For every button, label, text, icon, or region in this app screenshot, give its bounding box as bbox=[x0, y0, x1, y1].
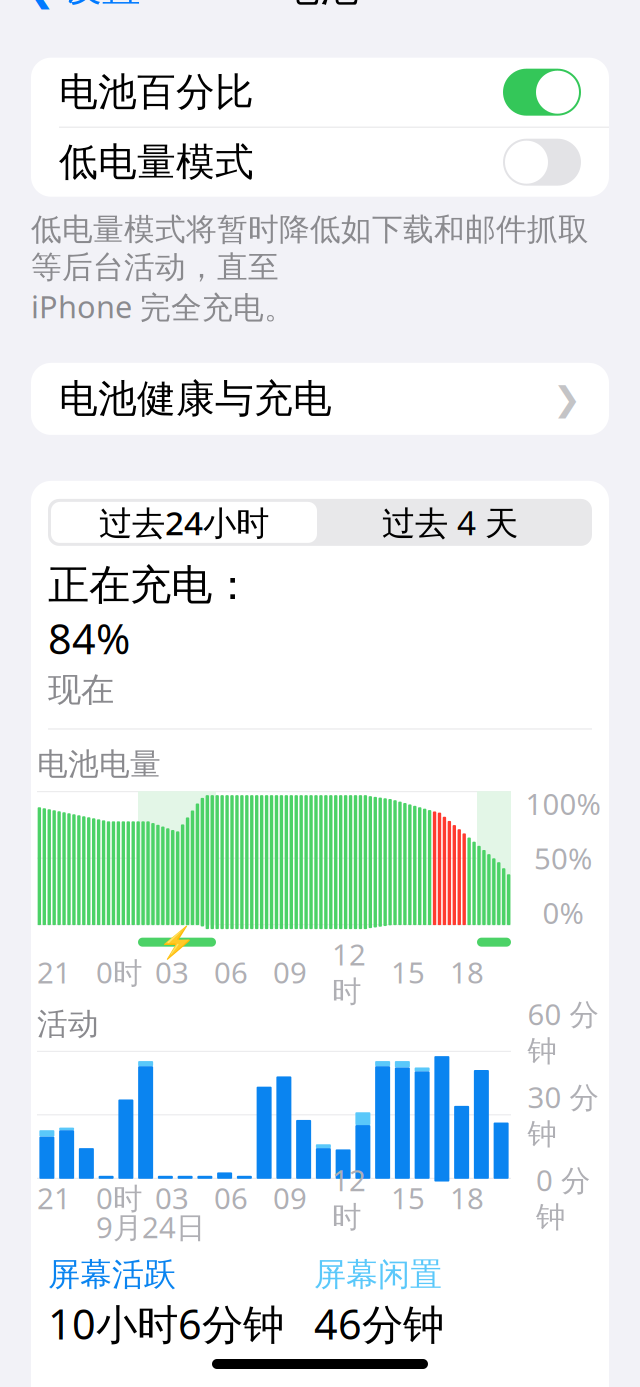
staticText: 过去 4 天 bbox=[382, 500, 518, 545]
staticText: 09 bbox=[273, 1178, 307, 1217]
staticText: 15 bbox=[391, 953, 425, 992]
staticText: 屏幕活跃 bbox=[48, 1255, 176, 1294]
staticText: 06 bbox=[214, 1178, 248, 1217]
staticText: ❮ bbox=[24, 0, 55, 9]
button[interactable]: 低电量模式 bbox=[31, 128, 609, 197]
staticText: 正在充电：84% bbox=[48, 560, 253, 666]
staticText: 电池 bbox=[281, 0, 359, 11]
staticText: ⚡ bbox=[158, 925, 196, 960]
staticText: 15 bbox=[391, 1178, 425, 1217]
staticText: ❯ bbox=[553, 380, 581, 418]
staticText: 9月24日 bbox=[96, 1207, 205, 1246]
staticText: 12时 bbox=[332, 935, 366, 1010]
staticText: 12时 bbox=[332, 1160, 366, 1235]
staticText: 0% bbox=[542, 893, 583, 932]
staticText: 30 分钟 bbox=[527, 1077, 598, 1152]
staticText: 电池电量 bbox=[37, 745, 161, 783]
staticText: 06 bbox=[214, 953, 248, 992]
button[interactable]: 电池百分比 bbox=[31, 58, 609, 127]
staticText: 活动 bbox=[37, 1005, 99, 1043]
button[interactable]: 过去24小时 bbox=[51, 502, 317, 543]
button[interactable]: 过去 4 天 bbox=[317, 502, 583, 543]
staticText: 100% bbox=[525, 784, 600, 823]
staticText: 低电量模式 bbox=[59, 138, 254, 186]
staticText: 21 bbox=[37, 1178, 71, 1217]
staticText: 03 bbox=[155, 1178, 189, 1217]
staticText: 50% bbox=[534, 839, 592, 878]
staticText: 设置 bbox=[63, 0, 141, 11]
staticText: 46分钟 bbox=[314, 1296, 444, 1351]
staticText: 电池百分比 bbox=[59, 68, 254, 116]
button[interactable]: ❮ bbox=[0, 0, 141, 19]
staticText: 电池健康与充电 bbox=[59, 375, 332, 423]
staticText: 0时 bbox=[96, 1178, 142, 1217]
staticText: 过去24小时 bbox=[99, 500, 269, 545]
staticText: 18 bbox=[450, 1178, 484, 1217]
staticText: 屏幕闲置 bbox=[314, 1255, 442, 1294]
staticText: 现在 bbox=[48, 669, 114, 710]
staticText: 低电量模式将暂时降低如下载和邮件抓取等后台活动，直至 iPhone 完全充电。 bbox=[31, 211, 589, 327]
staticText: 10小时6分钟 bbox=[48, 1296, 284, 1351]
staticText: 60 分钟 bbox=[527, 994, 598, 1069]
staticText: 0 分钟 bbox=[536, 1160, 590, 1235]
button[interactable]: 电池健康与充电 bbox=[31, 363, 609, 435]
staticText: 09 bbox=[273, 953, 307, 992]
staticText: 18 bbox=[450, 953, 484, 992]
staticText: 03 bbox=[155, 953, 189, 992]
staticText: 0时 bbox=[96, 953, 142, 992]
staticText: 21 bbox=[37, 953, 71, 992]
